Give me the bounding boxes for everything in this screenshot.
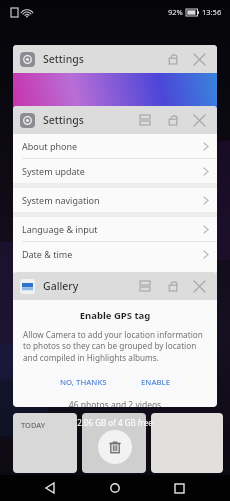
button[interactable]: Split screen — [134, 109, 156, 131]
staticText: Date & time — [22, 248, 73, 260]
button[interactable]: Lock app — [162, 275, 184, 297]
button[interactable]: ENABLE — [130, 374, 182, 390]
button[interactable]: Back — [38, 475, 64, 501]
button[interactable]: Date & time — [13, 242, 217, 266]
button[interactable]: Close — [188, 48, 210, 70]
button[interactable]: Home — [102, 475, 128, 501]
staticText: System update — [22, 165, 85, 177]
button[interactable]: Recents — [166, 475, 192, 501]
staticText: 46 photos and 2 videos — [13, 399, 217, 407]
button[interactable]: Clear all — [98, 430, 132, 464]
button[interactable]: Language & input — [13, 217, 217, 241]
staticText: NO, THANKS — [60, 377, 107, 388]
button[interactable]: System update — [13, 159, 217, 183]
button[interactable]: NO, THANKS — [49, 374, 118, 390]
button[interactable]: Close — [188, 109, 210, 131]
button[interactable]: Close — [188, 275, 210, 297]
button[interactable]: Lock app — [162, 48, 184, 70]
staticText: Gallery — [43, 279, 79, 293]
staticText: ENABLE — [141, 377, 171, 388]
staticText: Settings — [43, 52, 84, 66]
button[interactable]: System navigation — [13, 188, 217, 212]
button[interactable]: Split screen — [134, 275, 156, 297]
staticText: Settings — [43, 113, 84, 127]
button[interactable]: About phone — [13, 134, 217, 158]
staticText: TODAY — [21, 420, 46, 430]
staticText: System navigation — [22, 194, 100, 206]
staticText: About phone — [22, 140, 78, 152]
button[interactable]: Lock app — [162, 109, 184, 131]
staticText: 2.06 GB of 4 GB free — [0, 417, 230, 428]
staticText: 13:56 — [202, 7, 222, 17]
staticText: Allow Camera to add your location inform… — [23, 329, 207, 364]
button[interactable] — [151, 413, 223, 473]
button[interactable]: TODAY — [13, 413, 77, 473]
staticText: Enable GPS tag — [13, 309, 217, 322]
staticText: Language & input — [22, 223, 98, 235]
button[interactable] — [82, 413, 146, 473]
staticText: 92% — [168, 7, 183, 17]
